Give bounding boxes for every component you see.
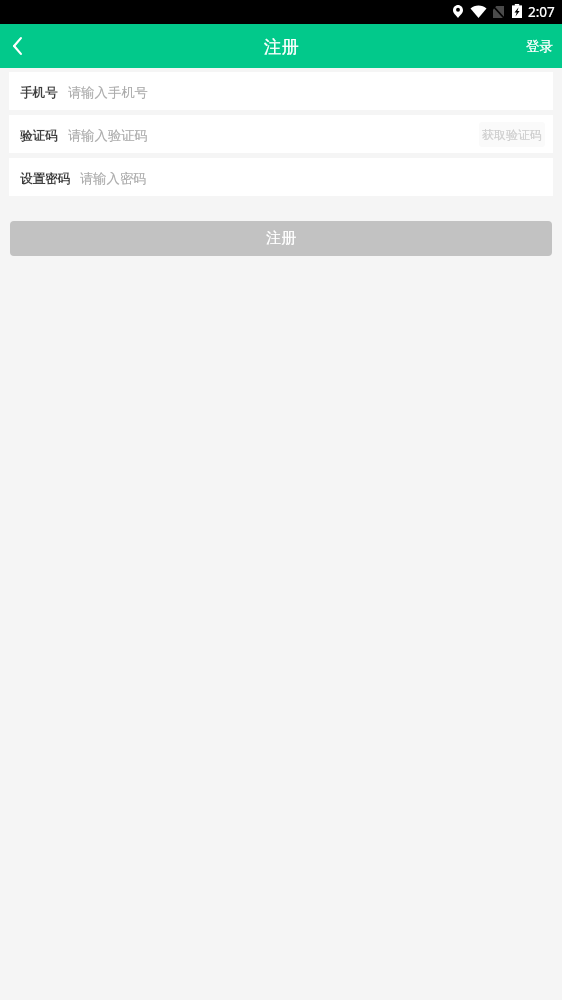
button[interactable]: 注册 (10, 221, 552, 256)
staticText: 注册 (266, 229, 296, 248)
staticText: 手机号 (20, 85, 58, 101)
button[interactable]: 验证码 (9, 115, 553, 153)
staticText: 验证码 (20, 128, 58, 144)
staticText: 请输入手机号 (68, 84, 148, 101)
staticText: 登录 (526, 38, 553, 55)
button[interactable]: 设置密码 (9, 158, 553, 196)
button[interactable]: 手机号 (9, 72, 553, 110)
staticText: 2:07 (528, 3, 555, 21)
staticText: 获取验证码 (482, 127, 542, 142)
staticText: 注册 (264, 36, 299, 58)
staticText: 请输入密码 (80, 170, 147, 187)
button[interactable]: 登录 (512, 26, 562, 67)
button[interactable]: 获取验证码 (479, 122, 545, 147)
staticText: 请输入验证码 (68, 127, 148, 144)
staticText: 设置密码 (20, 171, 70, 187)
button[interactable]: Back (0, 24, 34, 68)
